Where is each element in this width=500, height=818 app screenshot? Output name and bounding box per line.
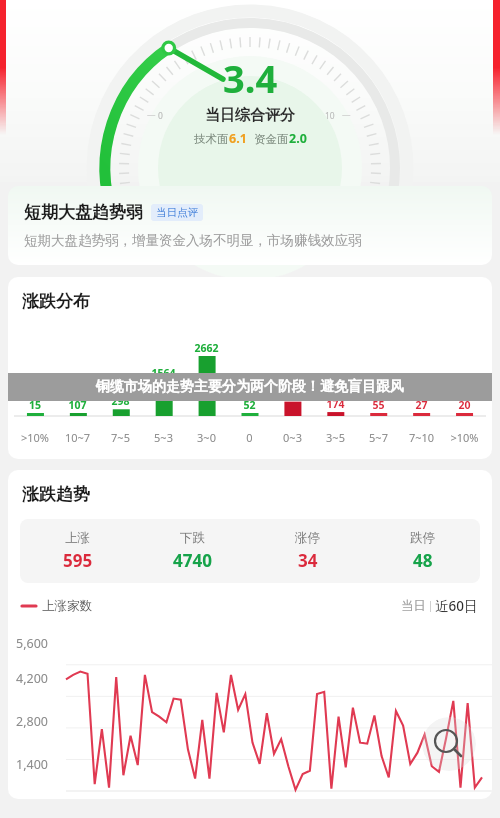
staticText: 3~5 bbox=[314, 430, 357, 445]
staticText: 10~7 bbox=[56, 430, 99, 445]
staticText: 跌停 bbox=[410, 530, 435, 546]
staticText: 当日 bbox=[401, 598, 426, 614]
staticText: >10% bbox=[14, 430, 56, 445]
staticText: 27 bbox=[400, 398, 443, 412]
staticText: 298 bbox=[99, 394, 142, 408]
staticText: 595 bbox=[63, 549, 93, 572]
staticText: 5,600 bbox=[16, 635, 48, 652]
staticText: 10 bbox=[325, 110, 335, 122]
button[interactable]: 下跌 bbox=[135, 530, 250, 572]
button[interactable]: 涨停 bbox=[250, 530, 365, 572]
staticText: 20 bbox=[443, 398, 486, 412]
staticText: 34 bbox=[298, 549, 318, 572]
staticText: 0 bbox=[228, 430, 271, 445]
staticText: 下跌 bbox=[180, 530, 205, 546]
staticText: — bbox=[147, 109, 156, 121]
staticText: 上涨家数 bbox=[42, 598, 92, 614]
staticText: 3.4 bbox=[223, 52, 278, 104]
staticText: 4,200 bbox=[16, 670, 48, 687]
staticText: — bbox=[342, 109, 351, 121]
button[interactable]: 涨跌趋势 bbox=[8, 470, 492, 799]
staticText: 5~7 bbox=[357, 430, 400, 445]
staticText: 涨跌分布 bbox=[22, 291, 90, 312]
staticText: 1,400 bbox=[16, 756, 48, 773]
staticText: 1564 bbox=[142, 366, 185, 380]
staticText: 当日点评 bbox=[156, 206, 198, 219]
staticText: 2662 bbox=[185, 341, 228, 355]
button[interactable]: 涨跌分布 bbox=[8, 277, 492, 459]
staticText: 0 bbox=[158, 110, 163, 122]
staticText: 15 bbox=[14, 398, 56, 412]
staticText: 短期大盘趋势弱 bbox=[24, 202, 143, 223]
button[interactable]: 短期大盘趋势弱 bbox=[8, 186, 492, 265]
staticText: 上涨 bbox=[65, 530, 90, 546]
staticText: 2,800 bbox=[16, 713, 48, 730]
staticText: 2.0 bbox=[289, 130, 307, 147]
staticText: 637 bbox=[271, 387, 314, 401]
staticText: 4740 bbox=[173, 549, 212, 572]
button[interactable]: 当日 bbox=[401, 597, 478, 615]
staticText: 涨停 bbox=[295, 530, 320, 546]
staticText: 6.1 bbox=[229, 130, 247, 147]
staticText: 技术面 bbox=[194, 132, 229, 146]
button[interactable]: Zoom chart bbox=[422, 717, 476, 771]
staticText: 5~3 bbox=[142, 430, 185, 445]
staticText: 铜缆市场的走势主要分为两个阶段！避免盲目跟风 bbox=[96, 378, 404, 396]
staticText: 0~3 bbox=[271, 430, 314, 445]
staticText: 近60日 bbox=[435, 597, 478, 615]
staticText: 当日综合评分 bbox=[205, 106, 295, 125]
button[interactable]: 跌停 bbox=[365, 530, 480, 572]
staticText: 资金面 bbox=[254, 132, 289, 146]
staticText: 7~10 bbox=[400, 430, 443, 445]
staticText: 107 bbox=[56, 398, 99, 412]
staticText: 174 bbox=[314, 397, 357, 411]
staticText: 涨跌趋势 bbox=[22, 484, 90, 505]
staticText: 52 bbox=[228, 398, 271, 412]
button[interactable]: 上涨 bbox=[20, 530, 135, 572]
staticText: >10% bbox=[443, 430, 486, 445]
staticText: 55 bbox=[357, 398, 400, 412]
staticText: 7~5 bbox=[99, 430, 142, 445]
staticText: 短期大盘趋势弱，增量资金入场不明显，市场赚钱效应弱 bbox=[24, 232, 362, 249]
staticText: 48 bbox=[413, 549, 433, 572]
staticText: 3~0 bbox=[185, 430, 228, 445]
